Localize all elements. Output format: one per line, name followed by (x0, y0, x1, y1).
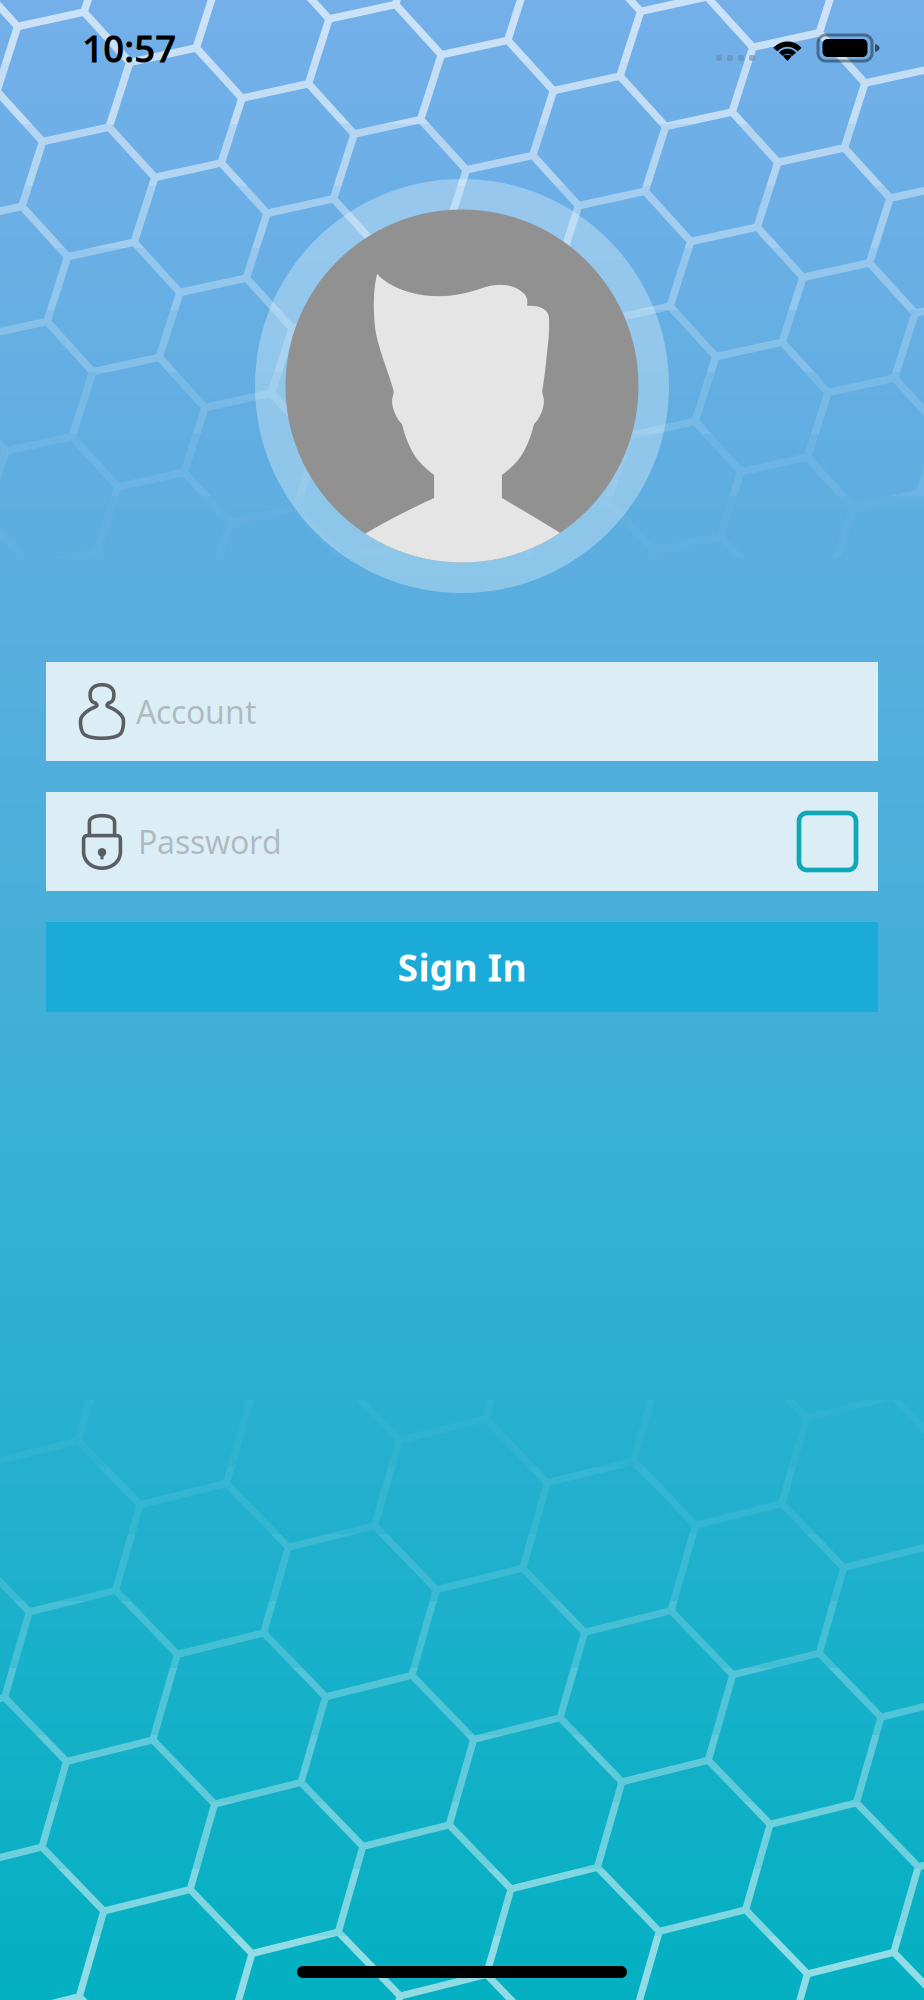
staticText: Password (138, 820, 282, 863)
staticText: Sign In (397, 942, 526, 992)
button[interactable]: Password (46, 792, 878, 891)
button[interactable]: Account (46, 662, 878, 761)
button[interactable]: Sign In (46, 922, 878, 1012)
staticText: Account (136, 690, 257, 733)
staticText: 10:57 (82, 23, 176, 73)
